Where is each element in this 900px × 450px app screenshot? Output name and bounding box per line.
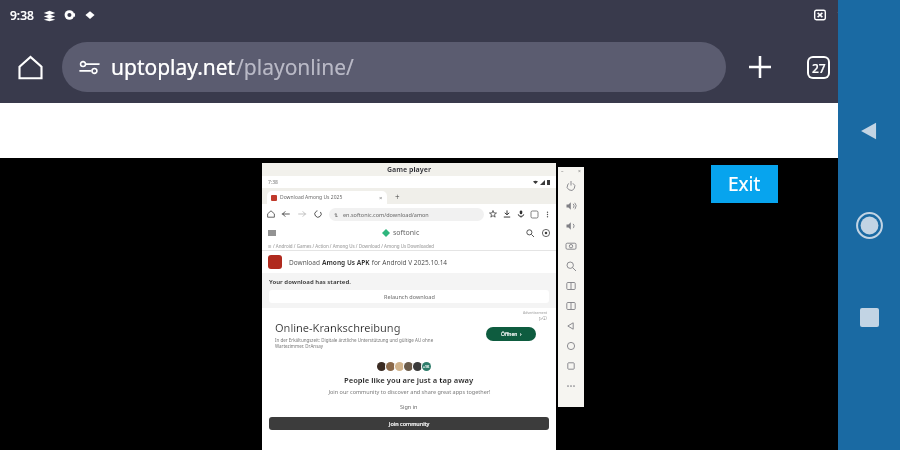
staticText: Game player <box>387 165 432 175</box>
staticText: Join community <box>389 420 430 427</box>
button[interactable]: New tab <box>738 45 782 89</box>
staticText: 9:38 <box>10 7 34 23</box>
button[interactable]: Exit <box>711 165 778 203</box>
staticText: × <box>379 194 383 202</box>
staticText: Öffnen › <box>501 331 522 338</box>
staticText: ≡ / Android / Games / Action / Among Us … <box>268 243 434 249</box>
staticText: People like you are just a tap away <box>344 375 474 385</box>
button[interactable]: Join community <box>269 417 549 430</box>
staticText: Advertisement <box>523 310 548 315</box>
button[interactable]: Home <box>838 201 900 249</box>
button[interactable]: uptoplay.net <box>62 42 726 92</box>
staticText: – <box>561 168 564 175</box>
staticText: 27 <box>812 60 826 76</box>
staticText: Download Among Us 2025 <box>280 194 343 201</box>
staticText: Online-Krankschreibung <box>275 320 401 335</box>
button[interactable]: Recent apps <box>838 293 900 341</box>
staticText: for Android V 2025.10.14 <box>370 258 448 267</box>
staticText: In der Erkältungszeit: Digitale ärztlich… <box>275 337 461 349</box>
staticText: Among Us APK <box>322 258 370 267</box>
button[interactable]: Home <box>8 45 52 89</box>
staticText: Sign in <box>400 403 418 410</box>
button[interactable]: Relaunch download <box>269 290 549 303</box>
button[interactable]: Sign in <box>269 400 549 413</box>
button[interactable]: Öffnen › <box>486 327 536 341</box>
staticText: ▷ⓘ <box>539 316 547 322</box>
staticText: Join our community to discover and share… <box>328 388 491 395</box>
staticText: Download <box>289 258 322 267</box>
staticText: /playonline/ <box>236 53 354 82</box>
staticText: Exit <box>728 171 761 197</box>
staticText: en.softonic.com/download/amon <box>343 211 429 218</box>
staticText: × <box>578 168 581 175</box>
button[interactable]: Back <box>838 107 900 155</box>
staticText: 7:38 <box>268 179 278 186</box>
staticText: + <box>395 191 400 202</box>
staticText: Relaunch download <box>384 293 435 300</box>
button[interactable]: Tabs, 27 open <box>796 45 840 89</box>
staticText: softonic <box>393 228 420 238</box>
staticText: ⇅ <box>334 212 339 218</box>
staticText: Your download has started. <box>269 278 351 286</box>
staticText: uptoplay.net <box>111 53 236 82</box>
staticText: +1K <box>423 364 430 369</box>
